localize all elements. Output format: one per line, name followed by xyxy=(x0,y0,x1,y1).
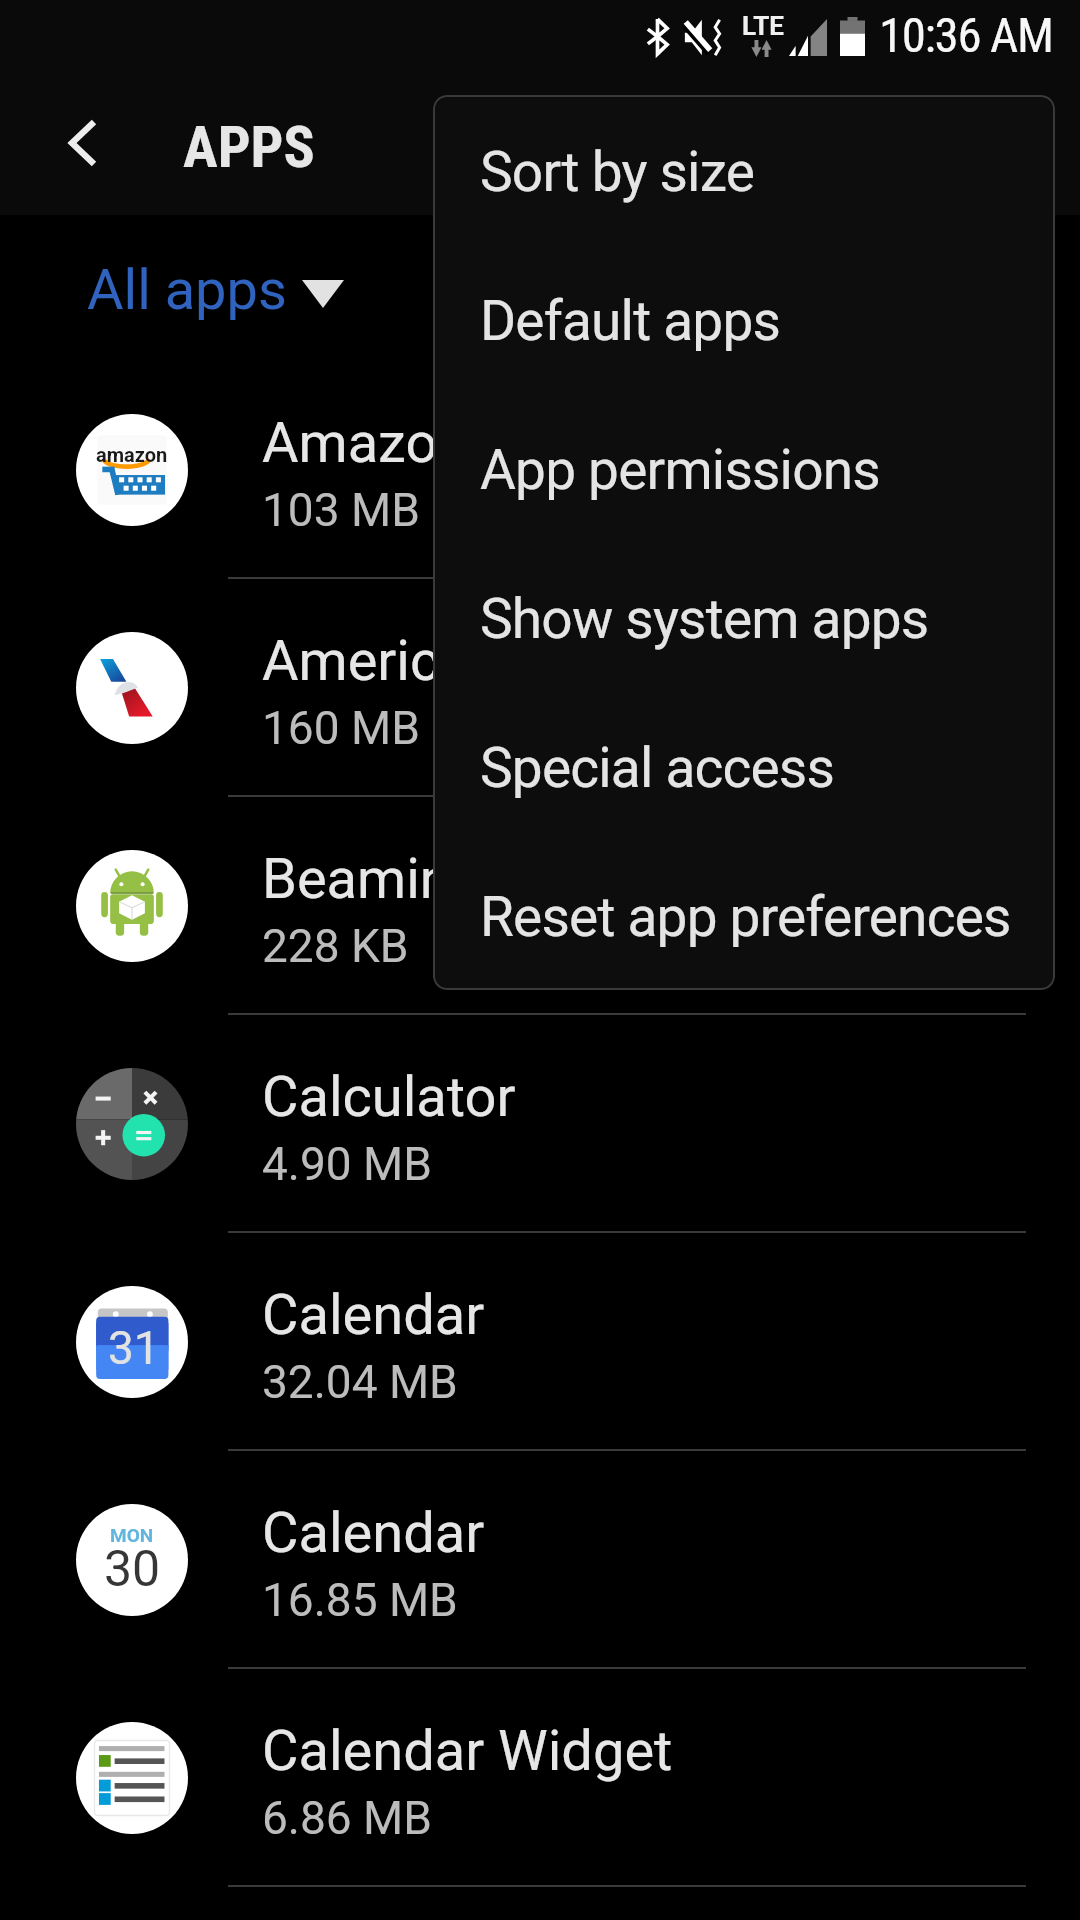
button[interactable]: Sort by size xyxy=(433,95,1055,244)
staticText: Calendar Widget xyxy=(262,1718,673,1784)
staticText: Calendar xyxy=(262,1282,485,1348)
button[interactable]: Navigate up xyxy=(0,70,165,215)
button[interactable]: Calculator xyxy=(0,1015,1080,1233)
button[interactable]: 31 xyxy=(0,1233,1080,1451)
staticText: 160 MB xyxy=(262,701,420,755)
button[interactable]: Default apps xyxy=(433,244,1055,393)
staticText: Reset app preferences xyxy=(480,885,1011,949)
button[interactable]: All apps filter xyxy=(63,230,368,350)
button[interactable]: Show system apps xyxy=(433,542,1055,691)
staticText: 31 xyxy=(108,1321,160,1375)
staticText: Calendar xyxy=(262,1500,485,1566)
staticText: Sort by size xyxy=(480,140,755,204)
staticText: 10:36 AM xyxy=(879,7,1053,64)
staticText: 30 xyxy=(104,1540,161,1599)
staticText: Special access xyxy=(480,736,835,800)
staticText: Default apps xyxy=(480,289,781,353)
button[interactable]: Beaming Service xyxy=(0,797,1080,1015)
staticText: Beaming Service xyxy=(262,846,679,912)
button[interactable]: amazon xyxy=(0,361,1080,579)
staticText: 16.85 MB xyxy=(262,1573,458,1627)
staticText: App permissions xyxy=(480,438,880,502)
staticText: Amazon Shopping xyxy=(262,410,718,476)
staticText: American Airlines xyxy=(262,628,701,694)
button[interactable]: Special access xyxy=(433,691,1055,840)
staticText: Show system apps xyxy=(480,587,929,651)
staticText: MON xyxy=(110,1524,154,1546)
button[interactable]: Calendar Widget xyxy=(0,1669,1080,1887)
button[interactable]: Reset app preferences xyxy=(433,840,1055,989)
staticText: APPS xyxy=(183,113,315,181)
staticText: LTE xyxy=(742,11,784,41)
staticText: 228 KB xyxy=(262,919,409,973)
button[interactable]: American Airlines xyxy=(0,579,1080,797)
staticText: amazon xyxy=(96,443,168,466)
staticText: 103 MB xyxy=(262,483,420,537)
staticText: 6.86 MB xyxy=(262,1791,432,1845)
staticText: All apps xyxy=(87,257,287,323)
button[interactable]: MON xyxy=(0,1451,1080,1669)
staticText: Calculator xyxy=(262,1064,516,1130)
staticText: 32.04 MB xyxy=(262,1355,458,1409)
button[interactable]: App permissions xyxy=(433,393,1055,542)
staticText: 4.90 MB xyxy=(262,1137,432,1191)
